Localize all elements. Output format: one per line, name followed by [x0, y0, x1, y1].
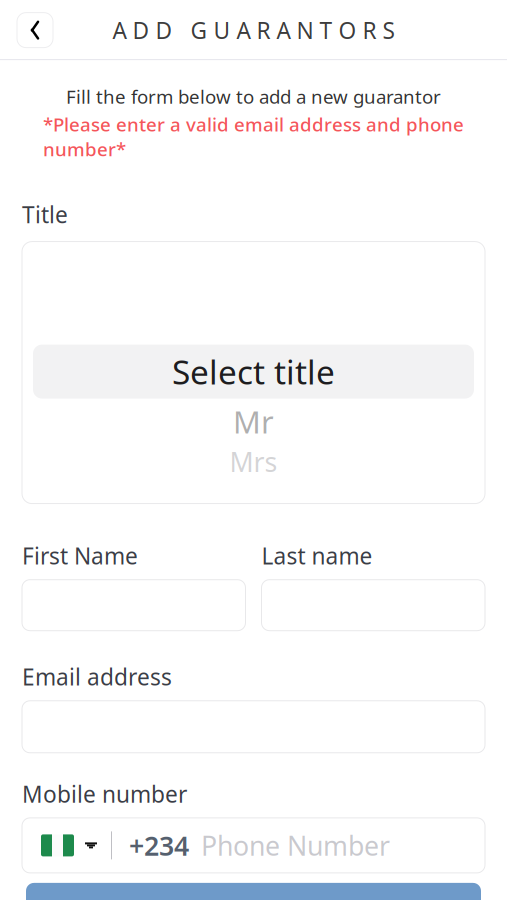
staticText: A D D G U A R A N T O R S	[112, 15, 394, 45]
staticText: Mrs	[229, 444, 277, 479]
staticText: Title	[22, 199, 68, 230]
staticText: Email address	[22, 662, 172, 692]
button[interactable]: Back	[17, 13, 53, 48]
button[interactable]: Mrs	[22, 445, 485, 479]
staticText: Select title	[172, 349, 335, 394]
staticText: First Name	[22, 541, 138, 571]
staticText: Last name	[261, 541, 372, 571]
button[interactable]	[26, 883, 481, 900]
button[interactable]: Select title	[22, 345, 485, 399]
staticText: *Please enter a valid email address and …	[43, 112, 464, 161]
button[interactable]: +234	[22, 818, 485, 873]
button[interactable]: Mr	[22, 399, 485, 445]
staticText: +234	[129, 828, 189, 863]
button[interactable]	[22, 580, 245, 631]
staticText: Mobile number	[22, 779, 187, 809]
staticText: Mr	[233, 401, 274, 442]
staticText: Phone Number	[201, 828, 390, 863]
staticText: Fill the form below to add a new guarant…	[66, 84, 441, 109]
